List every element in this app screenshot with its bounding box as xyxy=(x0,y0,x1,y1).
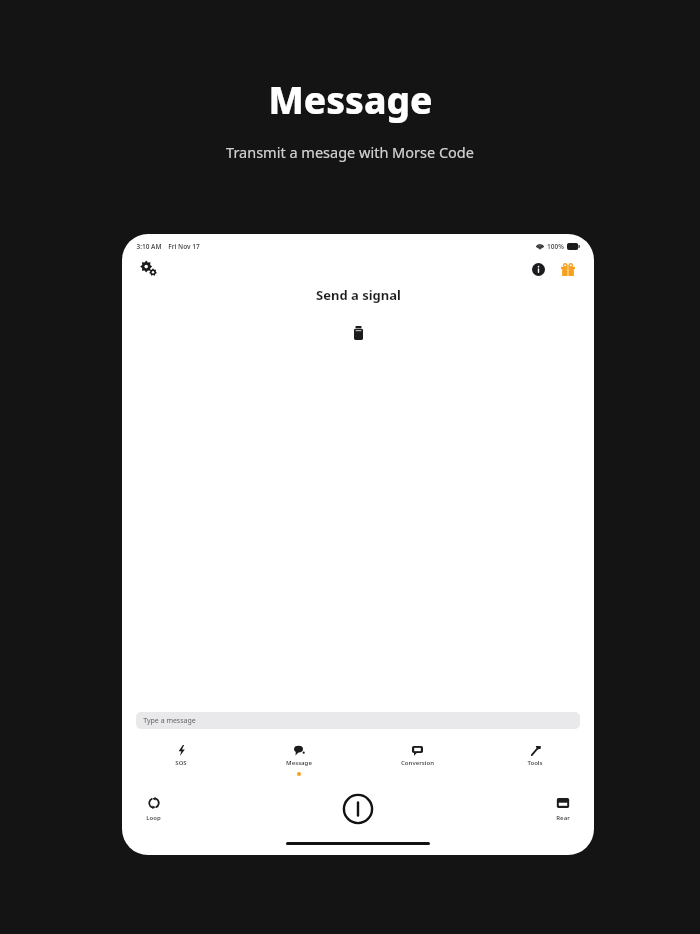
button[interactable]: Conversion xyxy=(358,743,476,774)
button[interactable]: Transmit xyxy=(337,788,379,830)
button[interactable]: Type a message xyxy=(136,712,580,729)
button[interactable]: Tools xyxy=(476,743,594,774)
staticText: Send a signal xyxy=(316,286,401,304)
staticText: Rear xyxy=(556,814,570,822)
staticText: Conversion xyxy=(401,759,434,767)
staticText: Loop xyxy=(146,814,161,822)
button[interactable]: Gift xyxy=(556,257,580,281)
button[interactable]: Information xyxy=(526,257,550,281)
staticText: 3:10 AM xyxy=(136,242,162,251)
button[interactable]: SOS xyxy=(122,743,240,774)
staticText: Tools xyxy=(527,759,543,767)
button[interactable]: Rear xyxy=(552,792,574,826)
staticText: Message xyxy=(268,74,433,124)
button[interactable]: Loop xyxy=(142,792,165,826)
button[interactable]: Message xyxy=(240,743,358,778)
button[interactable]: Settings xyxy=(136,256,162,282)
staticText: SOS xyxy=(175,759,187,767)
staticText: Type a message xyxy=(143,716,196,726)
staticText: Transmit a mesage with Morse Code xyxy=(226,142,474,162)
staticText: 100% xyxy=(547,242,564,251)
staticText: Message xyxy=(286,759,312,767)
staticText: Fri Nov 17 xyxy=(168,242,200,251)
